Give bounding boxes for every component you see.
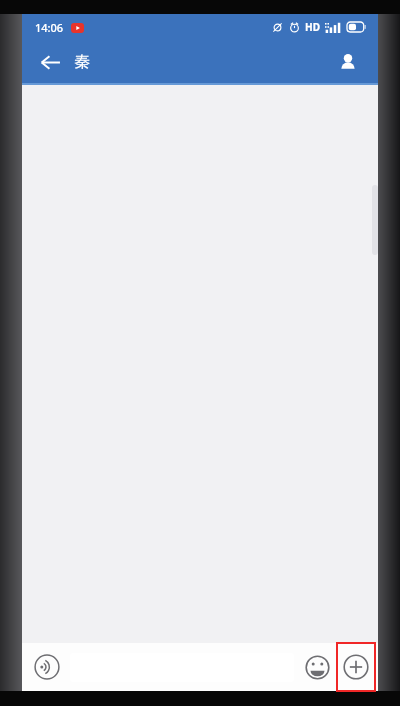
button[interactable]: Back [30,42,70,82]
staticText: 秦 [74,52,90,72]
button[interactable]: Emoji [298,648,336,686]
button[interactable]: Voice message [27,647,67,687]
button[interactable]: More options [337,643,375,691]
button[interactable]: Contact info [328,42,368,82]
staticText: 14:06 [35,20,64,35]
staticText: HD [305,20,320,34]
